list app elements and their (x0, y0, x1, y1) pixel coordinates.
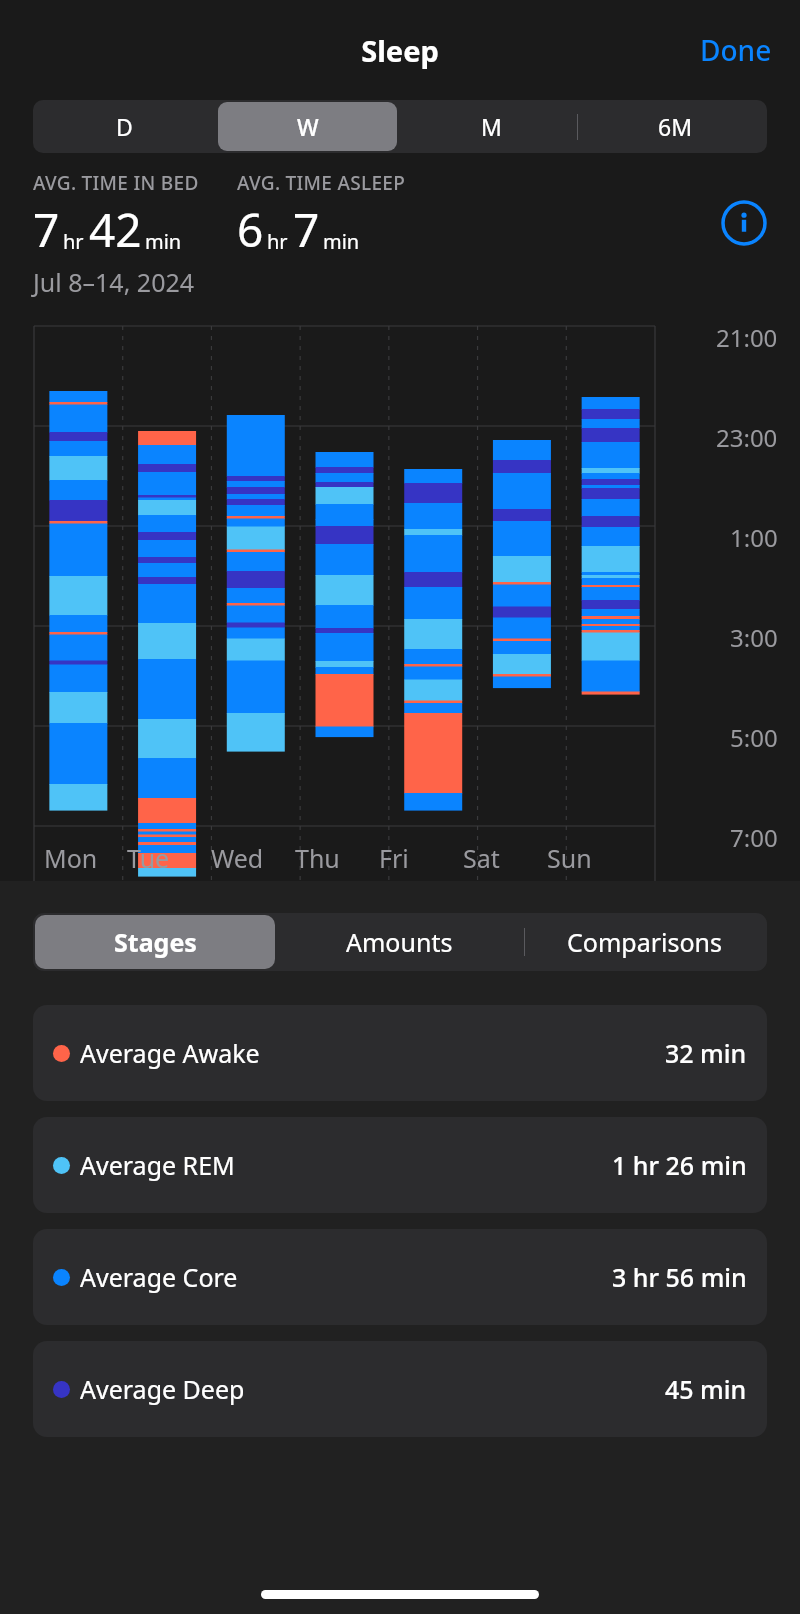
staticText: Done (700, 31, 772, 69)
staticText: Stages (114, 925, 197, 959)
button[interactable]: Amounts (279, 915, 520, 969)
staticText: Comparisons (567, 925, 723, 959)
button[interactable]: D (35, 102, 214, 151)
staticText: Sat (463, 841, 500, 875)
staticText: W (297, 111, 319, 142)
staticText: AVG. TIME IN BED (33, 170, 199, 196)
button[interactable]: W (218, 102, 397, 151)
staticText: 3:00 (730, 621, 778, 654)
button[interactable]: Comparisons (524, 915, 765, 969)
staticText: 32 min (665, 1036, 747, 1070)
staticText: 23:00 (716, 421, 778, 454)
staticText: min (323, 228, 360, 255)
staticText: Average REM (80, 1148, 235, 1182)
staticText: Average Deep (80, 1372, 245, 1406)
button[interactable]: 6M (585, 102, 765, 151)
button[interactable]: Average Core (33, 1229, 767, 1325)
staticText: 42 (89, 198, 142, 261)
staticText: Sun (547, 841, 592, 875)
staticText: 3 hr 56 min (612, 1260, 747, 1294)
staticText: AVG. TIME ASLEEP (237, 170, 406, 196)
staticText: Wed (211, 841, 264, 875)
staticText: 7:00 (730, 821, 778, 854)
button[interactable]: Done (694, 25, 778, 75)
staticText: D (116, 111, 133, 142)
staticText: Amounts (346, 925, 453, 959)
staticText: 6 (237, 198, 264, 261)
staticText: Mon (44, 841, 98, 875)
button[interactable]: Average Awake (33, 1005, 767, 1101)
staticText: Average Awake (80, 1036, 260, 1070)
button[interactable]: Stages (35, 915, 275, 969)
staticText: hr (63, 228, 84, 255)
staticText: 5:00 (730, 721, 778, 754)
staticText: min (145, 228, 182, 255)
button[interactable]: Average Deep (33, 1341, 767, 1437)
staticText: Fri (379, 841, 409, 875)
staticText: 7 (33, 198, 60, 261)
staticText: hr (267, 228, 288, 255)
staticText: Tue (127, 841, 170, 875)
staticText: 1:00 (730, 521, 778, 554)
staticText: Thu (295, 841, 340, 875)
button[interactable]: Average REM (33, 1117, 767, 1213)
staticText: 45 min (665, 1372, 747, 1406)
staticText: Jul 8–14, 2024 (33, 265, 195, 299)
staticText: Sleep (361, 31, 439, 70)
staticText: 6M (658, 111, 693, 142)
button[interactable]: Information about sleep data (721, 200, 767, 246)
staticText: 7 (293, 198, 320, 261)
staticText: 1 hr 26 min (612, 1148, 747, 1182)
staticText: M (481, 111, 502, 142)
staticText: Average Core (80, 1260, 238, 1294)
staticText: 21:00 (716, 321, 778, 354)
button[interactable]: M (401, 102, 581, 151)
